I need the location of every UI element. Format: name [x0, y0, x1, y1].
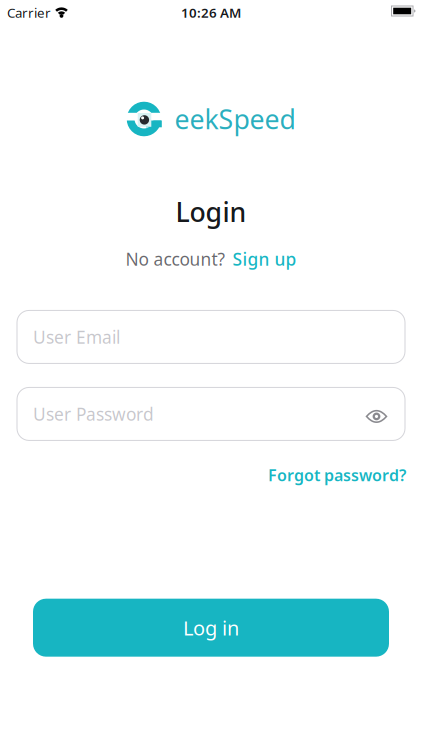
staticText: Carrier — [7, 4, 51, 21]
button[interactable]: User Email — [17, 310, 405, 363]
staticText: User Email — [33, 325, 120, 348]
staticText: Login — [175, 194, 246, 229]
button[interactable]: Show password — [367, 407, 389, 421]
staticText: eekSpeed — [174, 101, 295, 137]
button[interactable]: Forgot password? — [268, 464, 406, 486]
staticText: Log in — [183, 614, 239, 641]
button[interactable]: User Password — [17, 387, 405, 440]
staticText: Forgot password? — [268, 464, 406, 486]
staticText: 10:26 AM — [181, 4, 241, 21]
staticText: User Password — [33, 402, 154, 425]
button[interactable]: Log in — [33, 599, 389, 657]
staticText: Sign up — [232, 247, 296, 270]
staticText: No account? — [125, 247, 225, 270]
button[interactable]: Sign up — [232, 247, 296, 270]
